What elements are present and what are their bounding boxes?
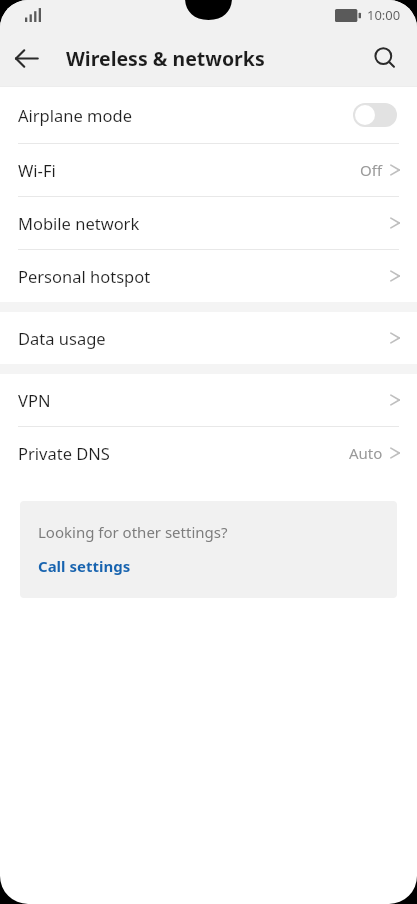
button[interactable]: Private DNS [0, 427, 417, 479]
button[interactable]: VPN [0, 374, 417, 426]
button[interactable]: Data usage [0, 312, 417, 364]
staticText: VPN [18, 389, 51, 411]
staticText: Auto [349, 443, 383, 463]
button[interactable]: Search [359, 32, 411, 84]
other: Airplane mode toggle [353, 103, 397, 127]
button[interactable]: Airplane mode [0, 87, 417, 143]
button[interactable]: Personal hotspot [0, 250, 417, 302]
staticText: Data usage [18, 327, 106, 349]
button[interactable]: Mobile network [0, 197, 417, 249]
staticText: Off [360, 160, 383, 180]
staticText: Airplane mode [18, 104, 132, 126]
button[interactable]: Wi-Fi [0, 144, 417, 196]
staticText: Looking for other settings? [38, 522, 228, 542]
staticText: Private DNS [18, 442, 110, 464]
button[interactable]: Back [0, 32, 52, 84]
staticText: Wi-Fi [18, 159, 56, 181]
staticText: Call settings [38, 556, 131, 576]
staticText: 10:00 [367, 6, 401, 24]
staticText: Mobile network [18, 212, 140, 234]
button[interactable]: Call settings [38, 556, 131, 576]
staticText: Wireless & networks [66, 45, 265, 72]
staticText: Personal hotspot [18, 265, 151, 287]
